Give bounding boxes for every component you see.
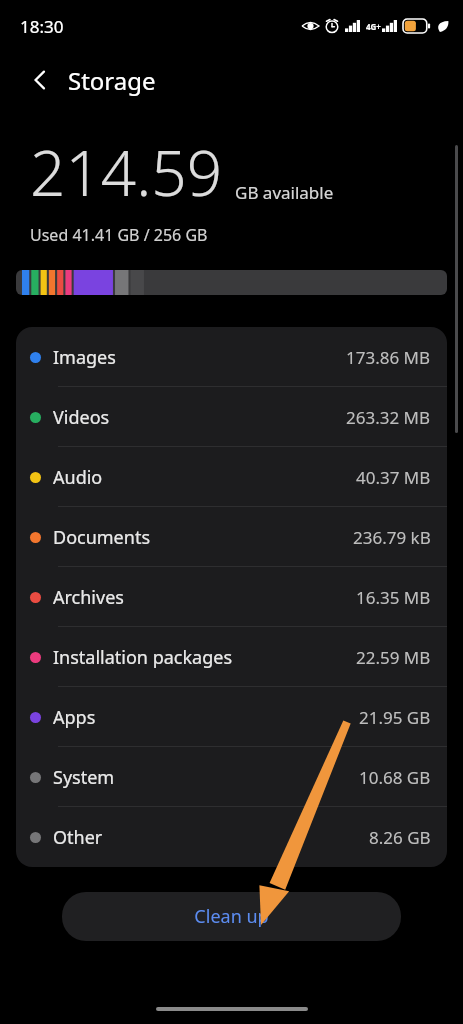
staticText: 22.59 MB bbox=[356, 646, 431, 669]
staticText: Used 41.41 GB / 256 GB bbox=[30, 224, 208, 246]
staticText: 40.37 MB bbox=[356, 466, 431, 489]
staticText: 21.95 GB bbox=[359, 706, 431, 729]
staticText: 16.35 MB bbox=[356, 586, 431, 609]
staticText: Images bbox=[53, 345, 116, 370]
staticText: Videos bbox=[53, 405, 110, 430]
staticText: Storage bbox=[68, 64, 156, 97]
button[interactable]: Audio bbox=[16, 447, 447, 507]
staticText: 8.26 GB bbox=[369, 826, 431, 849]
staticText: Other bbox=[53, 825, 103, 850]
button[interactable]: Installation packages bbox=[16, 627, 447, 687]
staticText: 18:30 bbox=[20, 15, 64, 38]
button[interactable]: Documents bbox=[16, 507, 447, 567]
button[interactable]: Back bbox=[16, 56, 64, 104]
staticText: Apps bbox=[53, 705, 96, 730]
button[interactable]: Other bbox=[16, 807, 447, 867]
staticText: Installation packages bbox=[53, 645, 233, 670]
staticText: 214.59 bbox=[30, 130, 223, 214]
staticText: GB available bbox=[235, 181, 334, 204]
button[interactable]: Clean up bbox=[62, 892, 401, 941]
staticText: Documents bbox=[53, 525, 151, 550]
staticText: 236.79 kB bbox=[353, 526, 431, 549]
button[interactable]: Apps bbox=[16, 687, 447, 747]
button[interactable]: Archives bbox=[16, 567, 447, 627]
staticText: System bbox=[53, 765, 115, 790]
staticText: 263.32 MB bbox=[346, 406, 431, 429]
staticText: Clean up bbox=[194, 904, 269, 929]
staticText: Archives bbox=[53, 585, 124, 610]
button[interactable]: Images bbox=[16, 327, 447, 387]
staticText: 173.86 MB bbox=[346, 346, 431, 369]
staticText: 4G+ bbox=[366, 21, 381, 32]
staticText: 10.68 GB bbox=[359, 766, 431, 789]
button[interactable]: Videos bbox=[16, 387, 447, 447]
button[interactable]: System bbox=[16, 747, 447, 807]
staticText: Audio bbox=[53, 465, 103, 490]
